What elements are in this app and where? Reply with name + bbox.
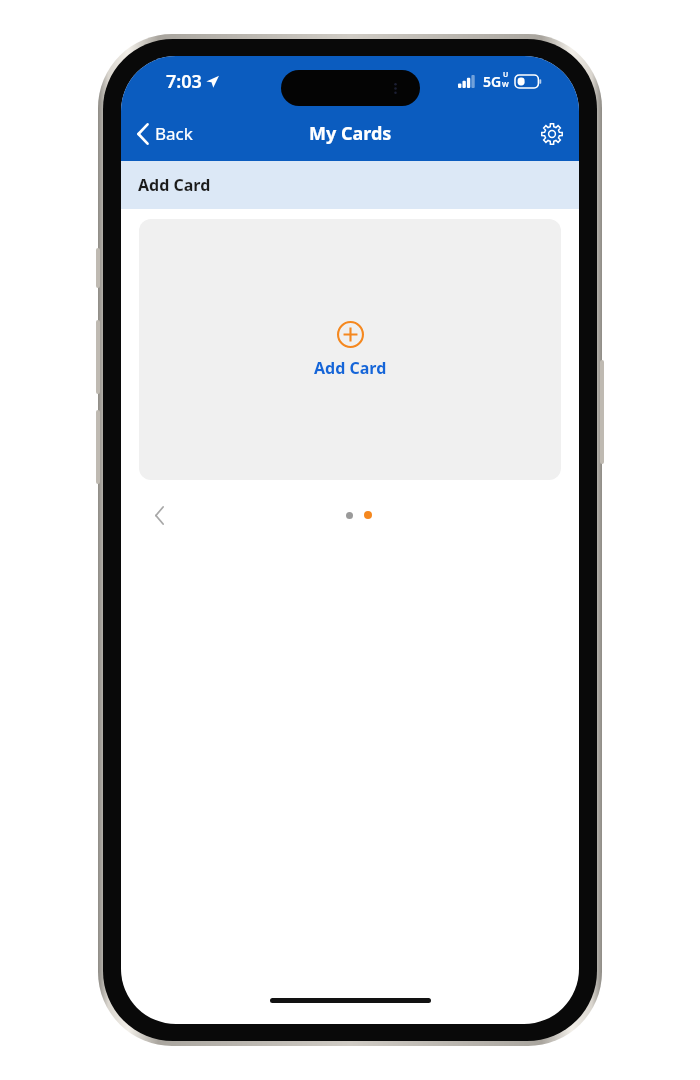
staticText: Add Card — [138, 174, 211, 196]
button[interactable]: Page 1 — [346, 512, 353, 519]
button[interactable]: Add Card — [121, 161, 579, 209]
staticText: My Cards — [309, 121, 392, 146]
staticText: U — [503, 70, 509, 80]
staticText: W — [502, 80, 509, 90]
button[interactable]: Previous card — [147, 499, 172, 532]
staticText: 7:03 — [166, 69, 202, 94]
button[interactable]: Add Card — [139, 219, 561, 480]
button[interactable]: Settings — [525, 111, 579, 157]
staticText: 5G — [483, 72, 502, 91]
button[interactable]: Back — [121, 114, 203, 153]
button[interactable]: Page 2 — [364, 511, 372, 519]
staticText: Back — [155, 122, 193, 145]
staticText: Add Card — [314, 357, 387, 379]
